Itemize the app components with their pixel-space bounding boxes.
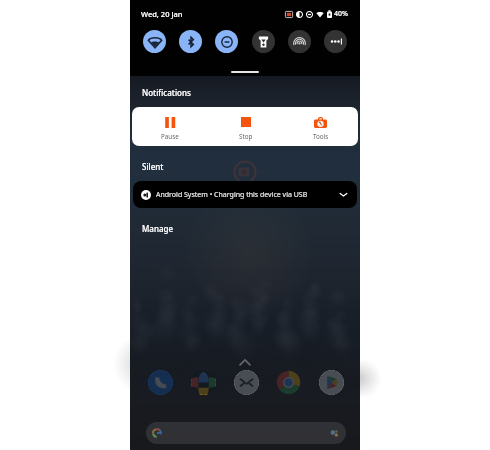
staticText: Manage — [142, 223, 174, 234]
button[interactable]: Play Store — [319, 370, 344, 395]
button[interactable]: Gmail — [234, 370, 259, 395]
staticText: Stop — [239, 132, 253, 141]
staticText: Android System • Charging this device vi… — [156, 190, 308, 200]
staticText: Notifications — [142, 87, 191, 98]
staticText: Wed, 20 Jan — [141, 9, 183, 19]
button[interactable]: Wi-Fi — [143, 30, 166, 53]
button[interactable]: Hotspot — [288, 30, 311, 53]
button[interactable]: Tools — [283, 107, 358, 146]
staticText: 40% — [334, 9, 348, 19]
button[interactable]: Bluetooth — [179, 30, 202, 53]
button[interactable]: Photos — [191, 370, 216, 395]
staticText: Tools — [313, 132, 329, 141]
other: Google Search — [152, 428, 162, 438]
staticText: Silent — [142, 161, 164, 172]
button[interactable]: Stop — [208, 107, 283, 146]
staticText: Pause — [161, 132, 179, 141]
button[interactable]: Chrome — [276, 370, 301, 395]
other: Google Lens — [330, 429, 339, 438]
button[interactable]: Pause — [132, 107, 208, 146]
button[interactable]: Flashlight — [252, 30, 275, 53]
button[interactable]: Do not disturb — [215, 30, 238, 53]
button[interactable]: More settings — [324, 30, 347, 53]
button[interactable]: Phone — [148, 370, 173, 395]
button[interactable]: Google Search — [146, 422, 346, 444]
button[interactable]: Android System • Charging this device vi… — [133, 181, 357, 208]
